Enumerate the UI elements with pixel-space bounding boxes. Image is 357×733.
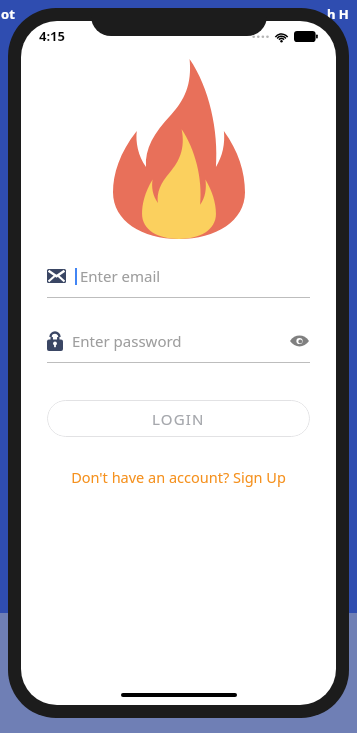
staticText: Don't have an account? Sign Up <box>71 467 286 487</box>
staticText: Enter password <box>72 331 182 351</box>
staticText: LOGIN <box>152 409 205 429</box>
staticText: ot <box>1 5 15 23</box>
button[interactable]: LOGIN <box>47 400 310 437</box>
staticText: 4:15 <box>39 27 65 45</box>
staticText: Enter email <box>80 266 161 286</box>
button[interactable]: Show password <box>288 330 310 352</box>
button[interactable]: Don't have an account? Sign Up <box>21 467 336 487</box>
staticText: h H <box>327 5 349 23</box>
